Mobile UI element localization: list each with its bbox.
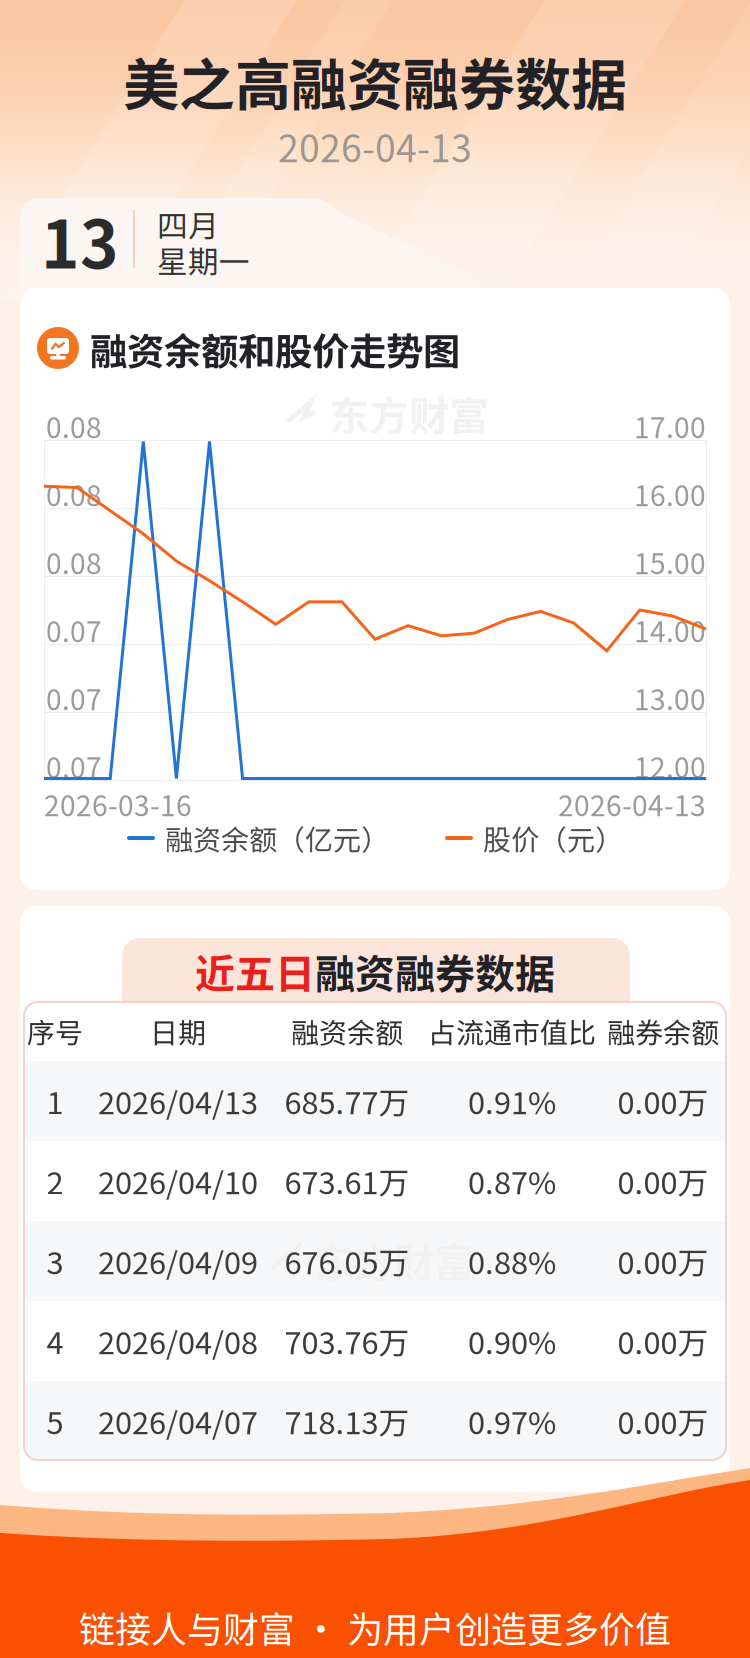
staticText: 2026/04/13	[98, 1079, 258, 1123]
staticText: 3	[46, 1239, 63, 1283]
staticText: 2026/04/07	[98, 1399, 258, 1443]
staticText: 近五日	[195, 942, 315, 1000]
staticText: 2026/04/10	[98, 1159, 258, 1203]
staticText: 17.00	[634, 406, 706, 446]
staticText: 2026-03-16	[44, 784, 192, 824]
staticText: 融资余额和股价走势图	[90, 322, 460, 376]
staticText: 0.87%	[468, 1159, 556, 1203]
staticText: 0.90%	[468, 1319, 556, 1363]
staticText: 美之高融资融券数据	[123, 40, 627, 122]
staticText: 2026-04-13	[558, 784, 706, 824]
staticText: 0.07	[46, 678, 102, 718]
staticText: 0.91%	[468, 1079, 556, 1123]
staticText: 融资余额（亿元）	[165, 818, 389, 858]
staticText: 12.00	[634, 746, 706, 786]
staticText: 5	[46, 1399, 63, 1443]
staticText: 四月	[157, 202, 219, 246]
staticText: 0.88%	[468, 1239, 556, 1283]
staticText: 13	[41, 193, 119, 287]
staticText: 0.97%	[468, 1399, 556, 1443]
staticText: 融券余额	[607, 1011, 719, 1051]
staticText: 东方财富	[329, 384, 489, 442]
staticText: 融资余额	[291, 1011, 403, 1051]
staticText: 15.00	[634, 542, 706, 582]
staticText: 13.00	[634, 678, 706, 718]
staticText: 673.61万	[284, 1159, 409, 1203]
staticText: 日期	[150, 1011, 206, 1051]
staticText: 占流通市值比	[428, 1011, 596, 1051]
staticText: 0.00万	[617, 1399, 708, 1443]
staticText: 0.08	[46, 406, 102, 446]
staticText: 0.00万	[617, 1239, 708, 1283]
staticText: 0.07	[46, 746, 102, 786]
staticText: 676.05万	[284, 1239, 409, 1283]
staticText: 718.13万	[284, 1399, 409, 1443]
staticText: 0.00万	[617, 1079, 708, 1123]
staticText: 2	[46, 1159, 63, 1203]
staticText: 2026/04/08	[98, 1319, 258, 1363]
staticText: 2026/04/09	[98, 1239, 258, 1283]
staticText: 703.76万	[284, 1319, 409, 1363]
staticText: 0.00万	[617, 1159, 708, 1203]
staticText: 0.00万	[617, 1319, 708, 1363]
staticText: 0.07	[46, 610, 102, 650]
staticText: 1	[46, 1079, 63, 1123]
staticText: 股价（元）	[483, 818, 623, 858]
staticText: 序号	[27, 1011, 83, 1051]
staticText: 2026-04-13	[278, 119, 472, 173]
staticText: 星期一	[157, 238, 250, 282]
staticText: 链接人与财富 · 为用户创造更多价值	[79, 1601, 671, 1653]
staticText: 融资融券数据	[315, 942, 555, 1000]
staticText: 0.08	[46, 474, 102, 514]
staticText: 0.08	[46, 542, 102, 582]
staticText: 16.00	[634, 474, 706, 514]
staticText: 14.00	[634, 610, 706, 650]
staticText: 4	[46, 1319, 63, 1363]
staticText: 东方财富	[314, 1231, 474, 1289]
staticText: 685.77万	[284, 1079, 409, 1123]
